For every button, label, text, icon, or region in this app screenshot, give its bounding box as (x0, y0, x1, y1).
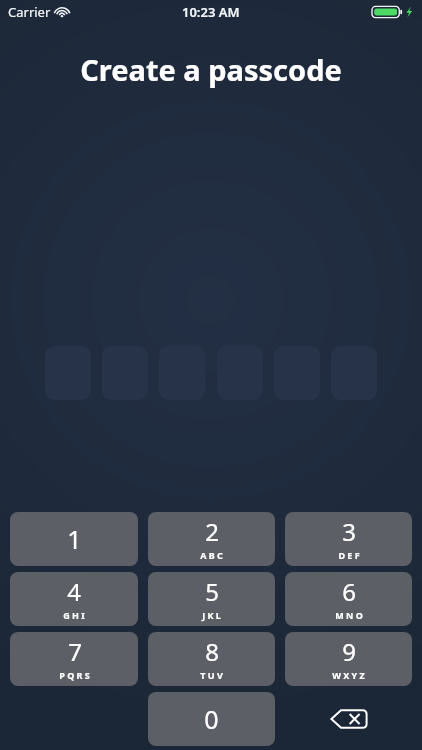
staticText: W X Y Z (332, 669, 365, 681)
button[interactable]: Delete (285, 692, 412, 746)
staticText: G H I (63, 609, 85, 621)
staticText: 0 (204, 702, 219, 736)
button[interactable]: 7 (10, 632, 138, 686)
staticText: 10:23 AM (182, 3, 240, 21)
staticText: 2 (205, 515, 219, 548)
staticText: J K L (202, 609, 221, 621)
button[interactable]: 4 (10, 572, 138, 626)
staticText: 4 (67, 575, 81, 608)
button[interactable]: 9 (285, 632, 412, 686)
staticText: D E F (338, 549, 360, 561)
staticText: 1 (67, 522, 82, 556)
staticText: 7 (68, 635, 82, 668)
button[interactable]: 5 (148, 572, 275, 626)
button[interactable]: 2 (148, 512, 275, 566)
button[interactable]: 1 (10, 512, 138, 566)
button[interactable]: 3 (285, 512, 412, 566)
button[interactable]: 8 (148, 632, 275, 686)
staticText: 6 (342, 575, 356, 608)
staticText: 9 (342, 635, 356, 668)
staticText: 5 (205, 575, 219, 608)
staticText: 8 (205, 635, 219, 668)
staticText: Create a passcode (0, 50, 422, 89)
staticText: M N O (335, 609, 363, 621)
button[interactable]: 6 (285, 572, 412, 626)
staticText: A B C (200, 549, 223, 561)
staticText: Carrier (8, 3, 51, 21)
button[interactable]: 0 (148, 692, 275, 746)
staticText: 3 (342, 515, 356, 548)
staticText: P Q R S (59, 669, 90, 681)
staticText: T U V (200, 669, 223, 681)
